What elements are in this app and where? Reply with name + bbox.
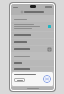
button[interactable]: Settings xyxy=(11,9,54,15)
button[interactable]: Edit xyxy=(48,25,51,28)
button[interactable]: Open xyxy=(11,46,54,52)
button[interactable] xyxy=(14,78,25,82)
button[interactable] xyxy=(11,32,54,38)
button[interactable]: Edit xyxy=(11,22,54,31)
button[interactable] xyxy=(11,60,54,66)
button[interactable] xyxy=(11,39,54,45)
button[interactable] xyxy=(11,67,54,71)
button[interactable]: Confirm xyxy=(43,75,51,83)
button[interactable]: Open xyxy=(48,48,51,51)
